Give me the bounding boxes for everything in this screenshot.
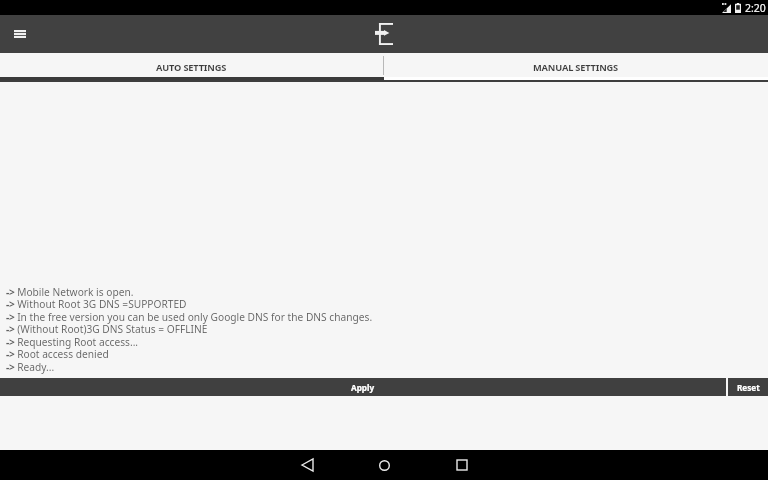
button[interactable]: Recents [423,450,500,480]
staticText: -> Ready... [6,360,55,374]
button[interactable]: MANUAL SETTINGS [384,53,768,77]
staticText: Apply [351,382,375,393]
staticText: -> In the free version you can be used o… [6,310,373,324]
button[interactable]: App logo [369,19,399,49]
button[interactable]: Home [346,450,423,480]
staticText: 2:20 [745,1,766,15]
button[interactable]: AUTO SETTINGS [0,53,383,77]
staticText: -> (Without Root)3G DNS Status = OFFLINE [6,322,208,336]
staticText: Reset [737,382,760,393]
staticText: -> Root access denied [6,347,109,361]
staticText: -> Requesting Root access... [6,335,139,349]
button[interactable]: Apply [0,378,726,396]
staticText: -> Without Root 3G DNS =SUPPORTED [6,297,187,311]
staticText: AUTO SETTINGS [156,61,227,74]
button[interactable]: Menu [6,20,34,48]
button[interactable]: Back [269,450,346,480]
staticText: -> Mobile Network is open. [6,285,134,299]
button[interactable]: Reset [728,378,768,396]
staticText: MANUAL SETTINGS [533,61,619,74]
